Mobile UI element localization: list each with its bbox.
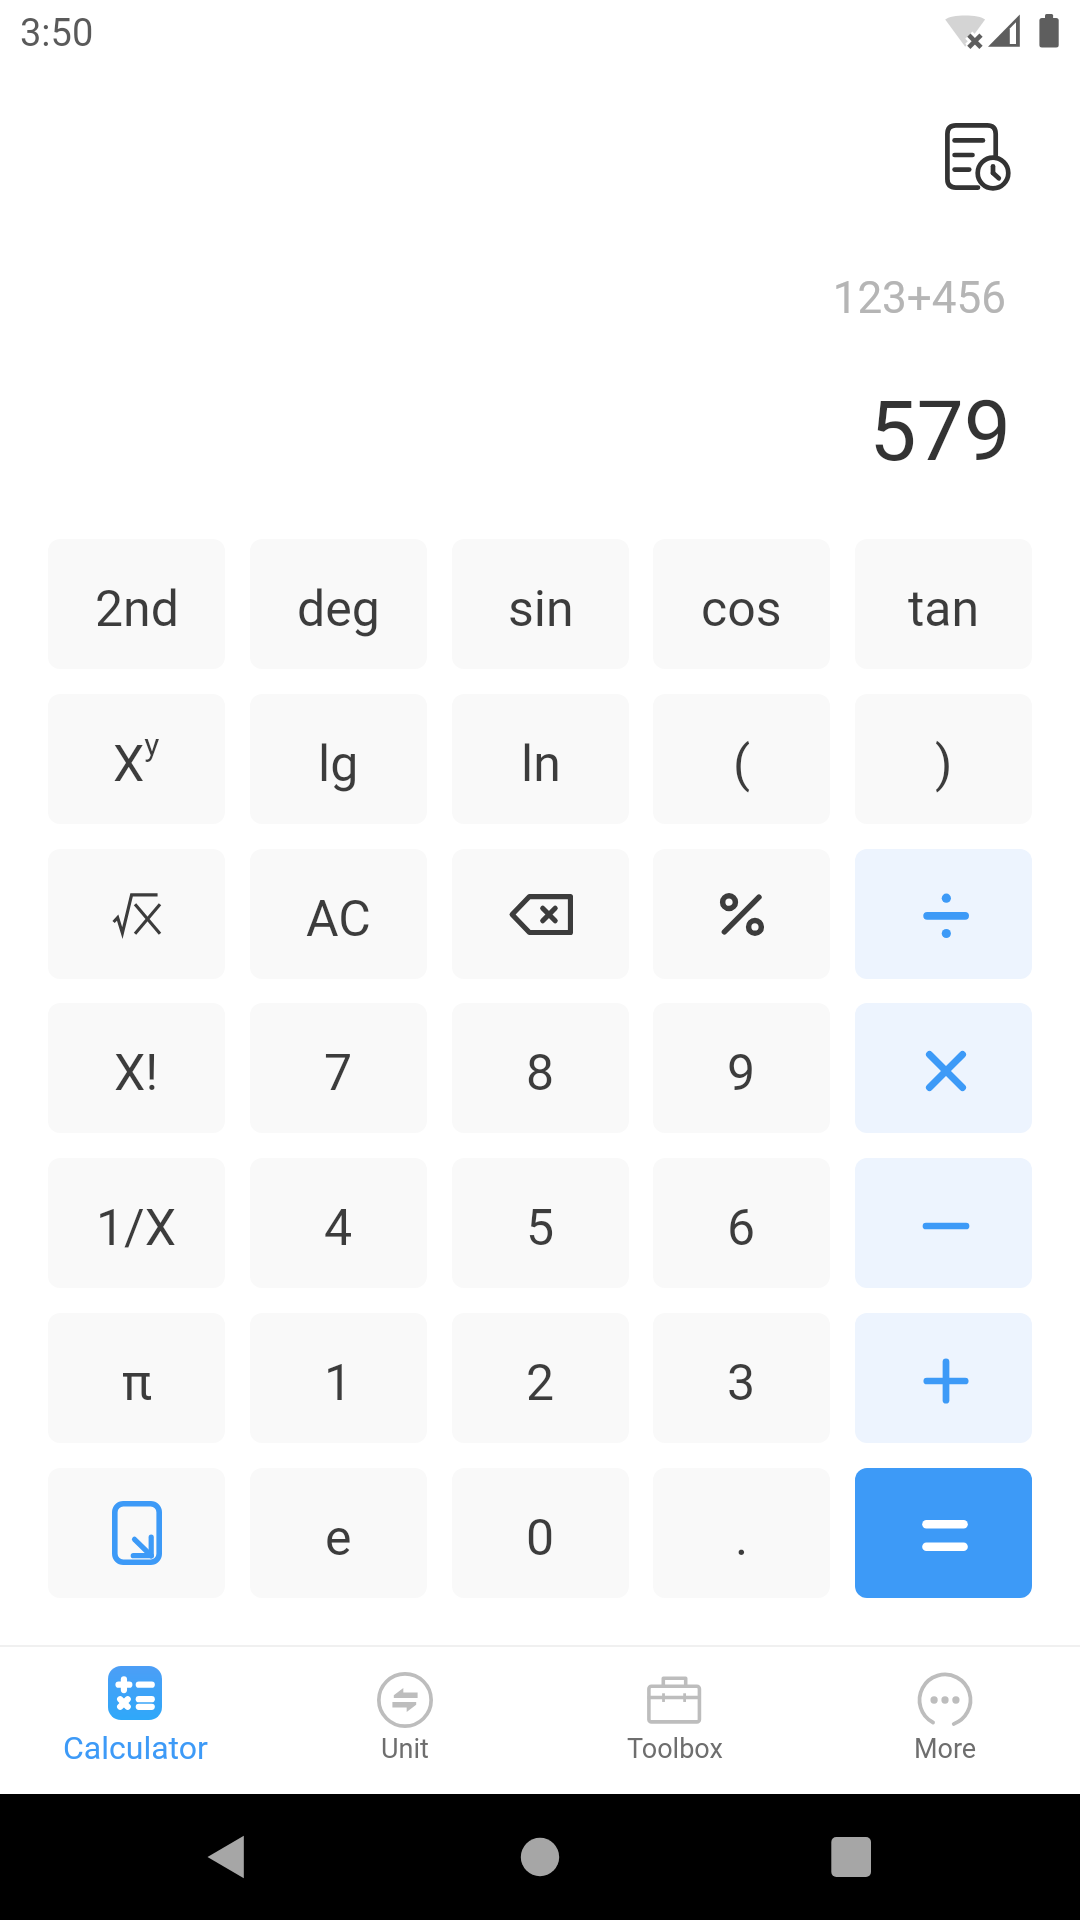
staticText: Calculator [63, 1729, 208, 1767]
staticText: Toolbox [627, 1733, 723, 1765]
button[interactable]: AC [250, 849, 427, 979]
button[interactable]: 7 [250, 1003, 427, 1133]
button[interactable]: Subtract [855, 1158, 1032, 1288]
staticText: Unit [381, 1733, 429, 1765]
staticText: More [914, 1733, 977, 1765]
staticText: Xy [113, 726, 160, 793]
staticText: 1/X [96, 1199, 177, 1258]
button[interactable]: ) [855, 694, 1032, 824]
button[interactable]: Toolbox [540, 1641, 810, 1791]
button[interactable]: cos [653, 539, 830, 669]
staticText: 7 [324, 1044, 353, 1103]
button[interactable]: 6 [653, 1158, 830, 1288]
staticText: AC [306, 890, 371, 949]
staticText: ) [935, 735, 953, 794]
button[interactable]: 8 [452, 1003, 629, 1133]
button[interactable]: Multiply [855, 1003, 1032, 1133]
other: Add [922, 1357, 970, 1405]
staticText: 4 [324, 1199, 353, 1258]
button[interactable]: 1/X [48, 1158, 225, 1288]
button[interactable]: Collapse keypad [48, 1468, 225, 1598]
button[interactable]: tan [855, 539, 1032, 669]
button[interactable]: 2nd [48, 539, 225, 669]
staticText: 2nd [95, 580, 179, 639]
button[interactable]: Unit [270, 1641, 540, 1791]
button[interactable]: History [931, 108, 1027, 204]
other: Multiply [922, 1047, 970, 1095]
button[interactable]: deg [250, 539, 427, 669]
staticText: 579 [0, 382, 1011, 480]
button[interactable]: sin [452, 539, 629, 669]
button[interactable]: ( [653, 694, 830, 824]
button[interactable]: 9 [653, 1003, 830, 1133]
button[interactable]: Divide [855, 849, 1032, 979]
other: Divide [922, 892, 970, 940]
button[interactable]: Backspace [452, 849, 629, 979]
staticText: tan [908, 580, 980, 639]
button[interactable]: Equals [855, 1468, 1032, 1598]
button[interactable]: X! [48, 1003, 225, 1133]
button[interactable]: π [48, 1313, 225, 1443]
staticText: e [325, 1509, 352, 1568]
button[interactable]: 0 [452, 1468, 629, 1598]
staticText: 9 [727, 1044, 756, 1103]
staticText: 0 [526, 1509, 555, 1568]
button[interactable]: 1 [250, 1313, 427, 1443]
staticText: cos [701, 580, 782, 639]
staticText: ln [521, 735, 561, 794]
button[interactable]: Xy [48, 694, 225, 824]
button[interactable]: lg [250, 694, 427, 824]
button[interactable] [48, 849, 225, 979]
button[interactable]: Add [855, 1313, 1032, 1443]
other: Collapse keypad [112, 1501, 162, 1565]
button[interactable]: ln [452, 694, 629, 824]
staticText: ( [733, 735, 751, 794]
other: Percent [720, 892, 764, 937]
button[interactable]: Calculator [0, 1641, 270, 1791]
button[interactable]: 3 [653, 1313, 830, 1443]
staticText: 8 [526, 1044, 555, 1103]
button[interactable]: More [810, 1641, 1080, 1791]
button[interactable]: Percent [653, 849, 830, 979]
staticText: 3:50 [20, 11, 94, 56]
staticText: 123+456 [0, 272, 1006, 324]
staticText: . [735, 1509, 749, 1568]
button[interactable]: . [653, 1468, 830, 1598]
button[interactable]: 5 [452, 1158, 629, 1288]
staticText: deg [297, 580, 380, 639]
staticText: 5 [526, 1199, 555, 1258]
button[interactable]: 2 [452, 1313, 629, 1443]
button[interactable]: 4 [250, 1158, 427, 1288]
staticText: 1 [324, 1354, 353, 1413]
staticText: π [122, 1354, 152, 1413]
staticText: lg [318, 735, 359, 794]
staticText: X! [114, 1044, 159, 1103]
other: Backspace [508, 894, 573, 935]
staticText: 6 [727, 1199, 756, 1258]
other: Subtract [922, 1202, 970, 1250]
staticText: 2 [526, 1354, 555, 1413]
other: Equals [922, 1520, 968, 1551]
button[interactable]: e [250, 1468, 427, 1598]
staticText: sin [508, 580, 574, 639]
staticText: 3 [727, 1354, 756, 1413]
